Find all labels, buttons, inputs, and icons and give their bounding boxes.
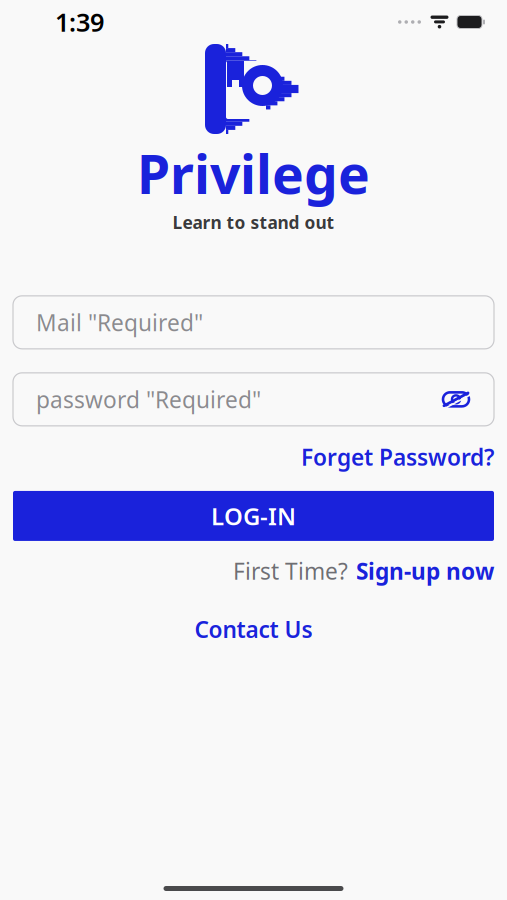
staticText: password "Required" [36, 384, 261, 414]
staticText: Sign-up now [356, 556, 494, 586]
staticText: Contact Us [194, 614, 312, 644]
staticText: 1:39 [55, 5, 104, 39]
button[interactable]: Forget Password? [301, 442, 494, 472]
button[interactable]: Sign-up now [356, 556, 494, 586]
button[interactable]: LOG-IN [13, 491, 494, 541]
button[interactable]: Contact Us [194, 614, 312, 644]
staticText: LOG-IN [211, 500, 296, 532]
staticText: Privilege [137, 138, 370, 209]
staticText: First Time? [233, 556, 348, 586]
staticText: Mail "Required" [36, 307, 203, 337]
staticText: Learn to stand out [172, 211, 334, 234]
button[interactable]: Show password [441, 387, 471, 411]
staticText: Forget Password? [301, 442, 494, 472]
